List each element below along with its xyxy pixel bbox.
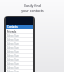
staticText: Alexa Sun	[7, 38, 19, 41]
staticText: Alexa Sun	[7, 50, 19, 53]
button[interactable]: Alexa Sun	[6, 37, 33, 41]
staticText: Alexa Sun	[7, 58, 19, 61]
button[interactable]: Alexa Sun	[6, 65, 33, 69]
button[interactable]: Alexa Sun	[6, 49, 33, 53]
staticText: Alexa Sun	[7, 66, 19, 69]
button[interactable]: Alexa Sun	[6, 61, 33, 65]
staticText: Alexa Sun	[7, 34, 19, 37]
staticText: your contacts	[21, 8, 44, 13]
staticText: Alexa Sun	[7, 70, 19, 72]
staticText: Alexa Sun	[7, 54, 19, 57]
staticText: Friends	[7, 30, 17, 33]
button[interactable]: Alexa Sun	[6, 53, 33, 57]
staticText: Alexa Sun	[7, 46, 19, 49]
button[interactable]: Alexa Sun	[6, 41, 33, 45]
button[interactable]: Alexa Sun	[6, 33, 33, 37]
staticText: Alexa Sun	[7, 42, 19, 45]
button[interactable]: Alexa Sun	[6, 69, 33, 72]
button[interactable]: Alexa Sun	[6, 57, 33, 61]
button[interactable]: Alexa Sun	[6, 45, 33, 49]
staticText: Easily find	[24, 3, 41, 8]
staticText: Contacts	[7, 25, 18, 29]
staticText: Alexa Sun	[7, 62, 19, 65]
